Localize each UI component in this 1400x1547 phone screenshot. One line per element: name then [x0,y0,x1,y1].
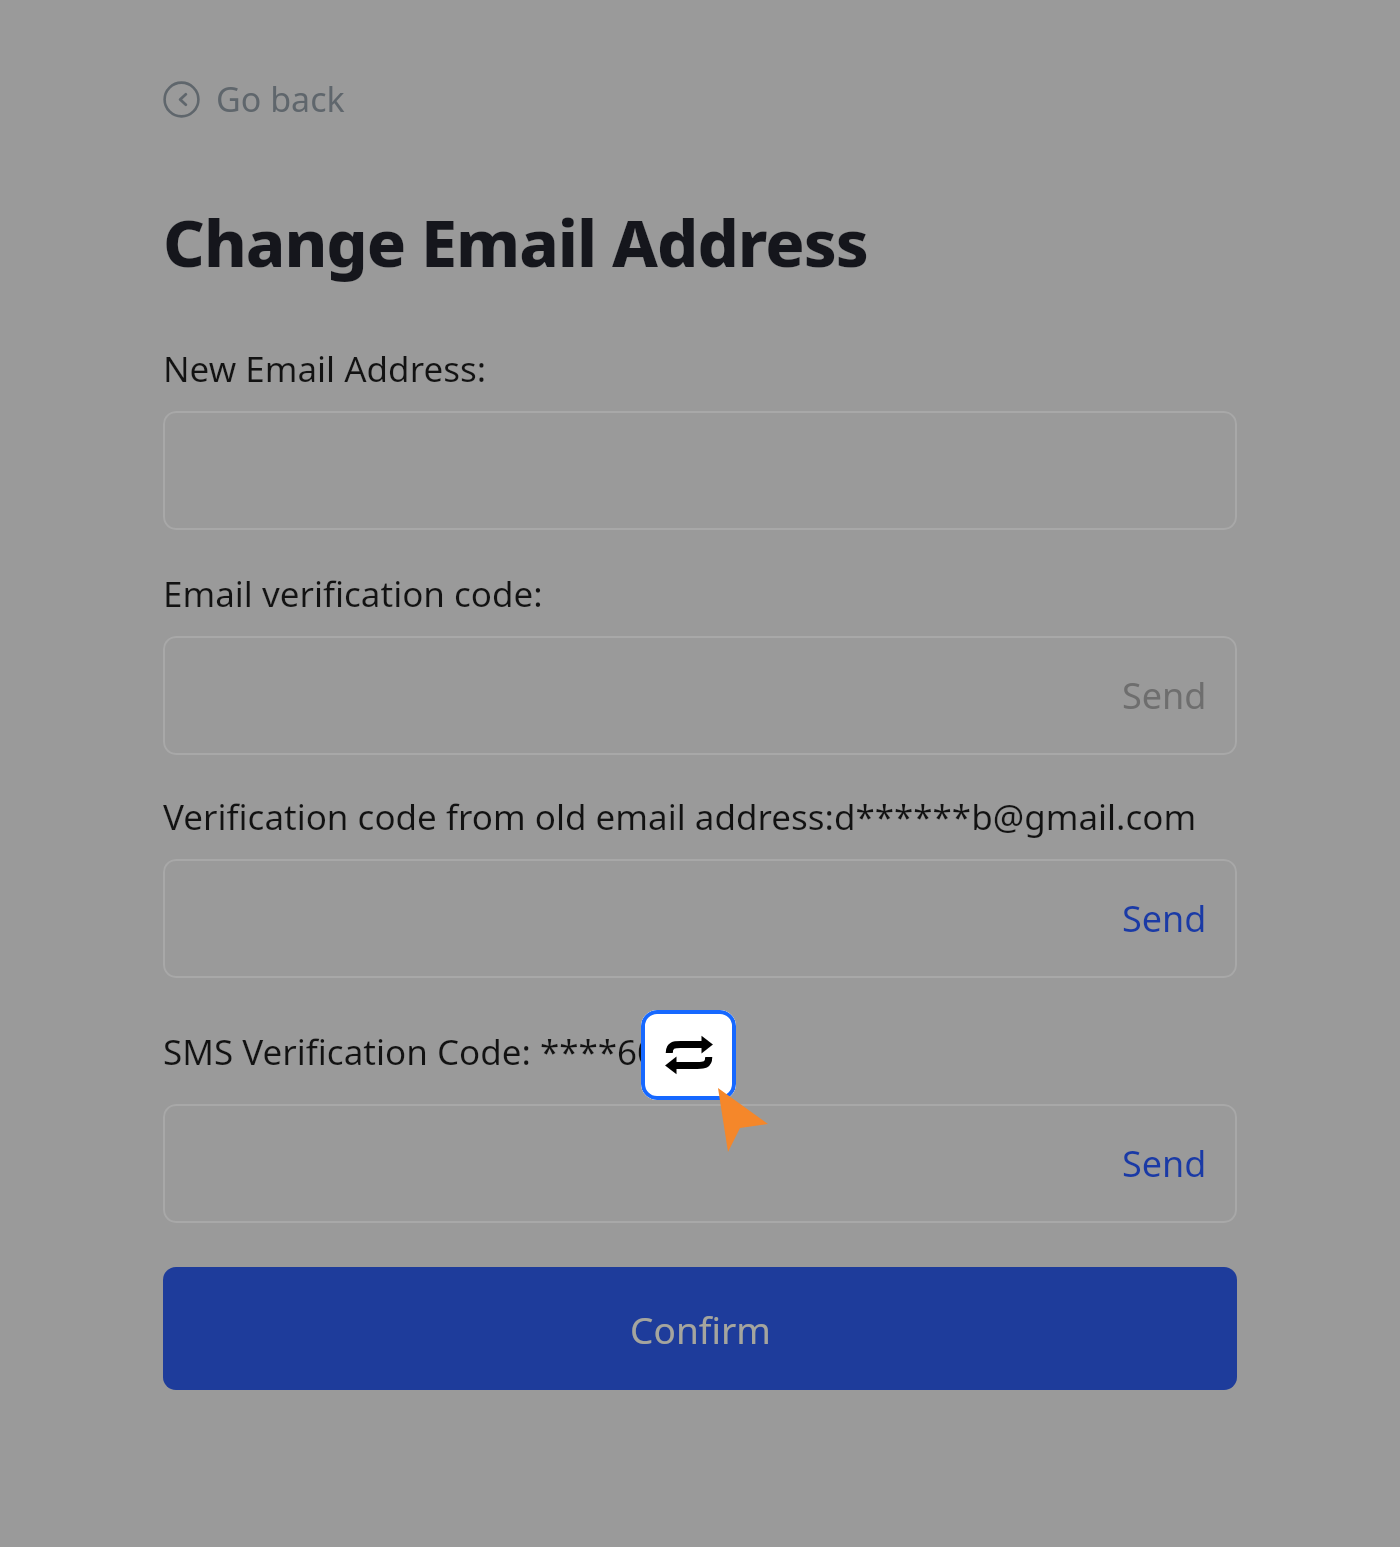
staticText: Go back [216,76,345,122]
staticText: Send [1122,894,1207,943]
button[interactable]: Confirm [163,1267,1237,1390]
staticText: Verification code from old email address… [163,793,1197,841]
staticText: SMS Verification Code: ****6035 [163,1028,698,1076]
button[interactable]: Send [1092,653,1237,738]
button[interactable]: Send [1092,1121,1237,1206]
staticText: Email verification code: [163,570,543,618]
button[interactable]: Send [163,859,1237,978]
staticText: Change Email Address [163,198,868,287]
staticText: Send [1122,1139,1207,1188]
button[interactable]: Send [163,1104,1237,1223]
button[interactable]: Send [1092,876,1237,961]
staticText: Send [1122,671,1207,720]
button[interactable]: Send [163,636,1237,755]
button[interactable]: Switch verification method [641,1010,736,1100]
staticText: New Email Address: [163,345,487,393]
staticText: Confirm [630,1304,771,1354]
button[interactable]: Go back [163,76,353,122]
